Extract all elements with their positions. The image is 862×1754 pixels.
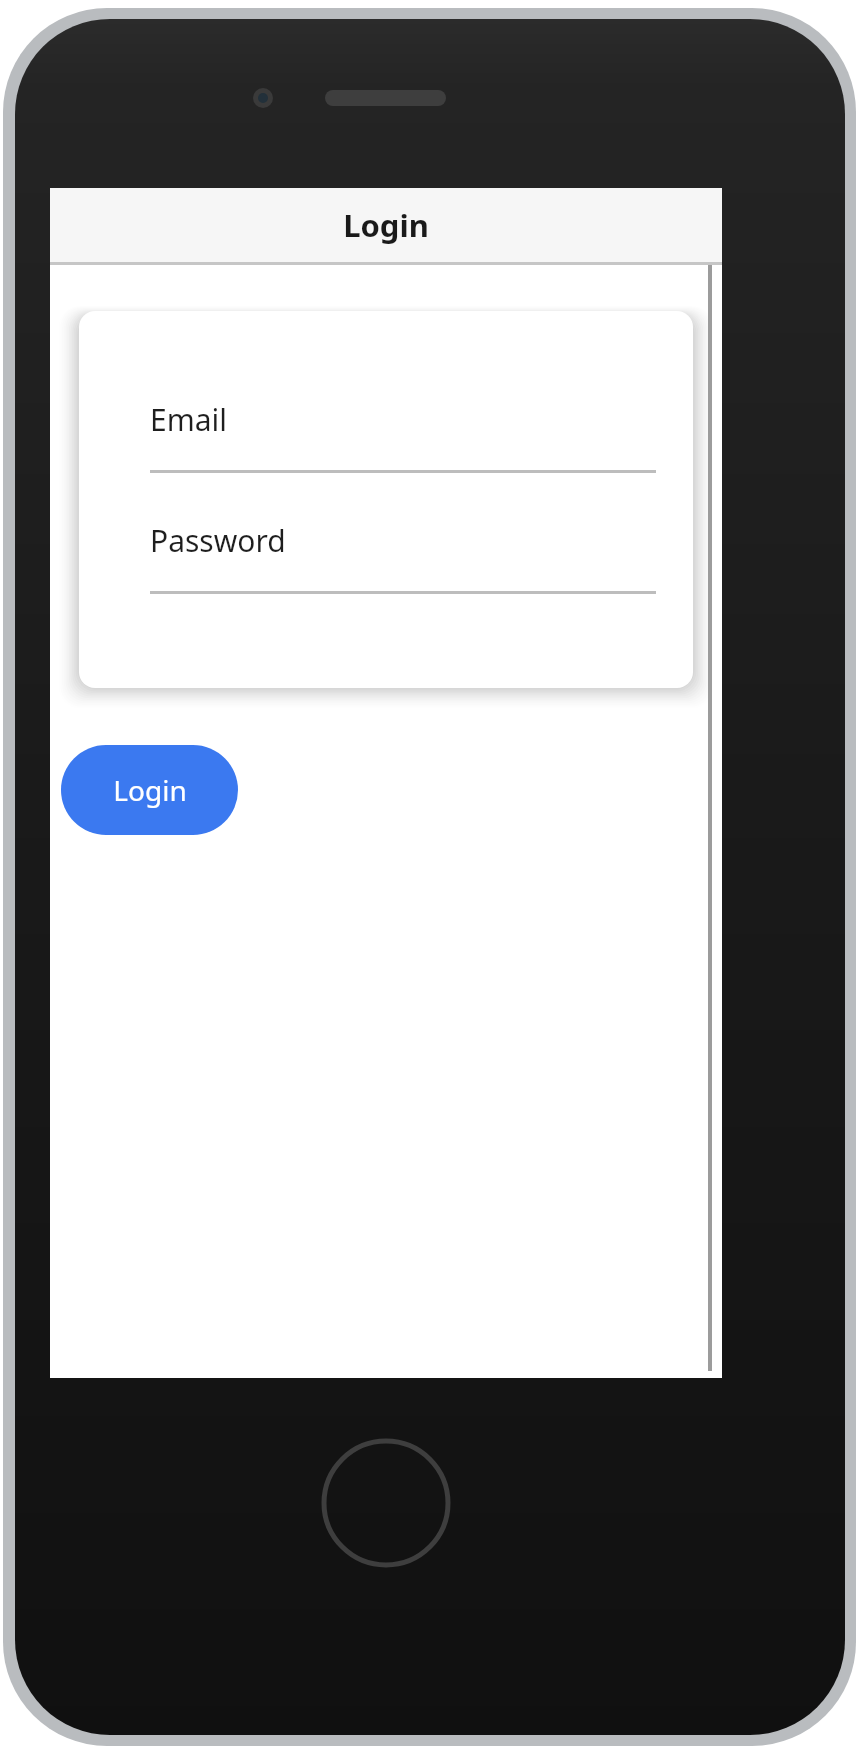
staticText: Email — [150, 399, 228, 440]
staticText: Login — [343, 204, 429, 246]
button[interactable]: Password — [150, 520, 656, 594]
button[interactable]: Login — [61, 745, 238, 835]
button[interactable]: Email — [150, 399, 656, 473]
staticText: Login — [113, 771, 187, 809]
staticText: Password — [150, 520, 286, 561]
